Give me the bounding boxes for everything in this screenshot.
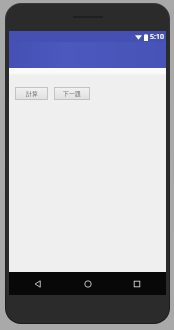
button[interactable]: 計算 xyxy=(15,87,48,100)
staticText: 5:10 xyxy=(150,32,164,42)
button[interactable]: Back xyxy=(27,273,49,295)
staticText: 下一題 xyxy=(63,90,81,98)
button[interactable]: Recents xyxy=(126,273,148,295)
button[interactable]: 下一題 xyxy=(54,87,90,100)
staticText: 計算 xyxy=(26,90,38,98)
button[interactable]: Home xyxy=(77,273,99,295)
